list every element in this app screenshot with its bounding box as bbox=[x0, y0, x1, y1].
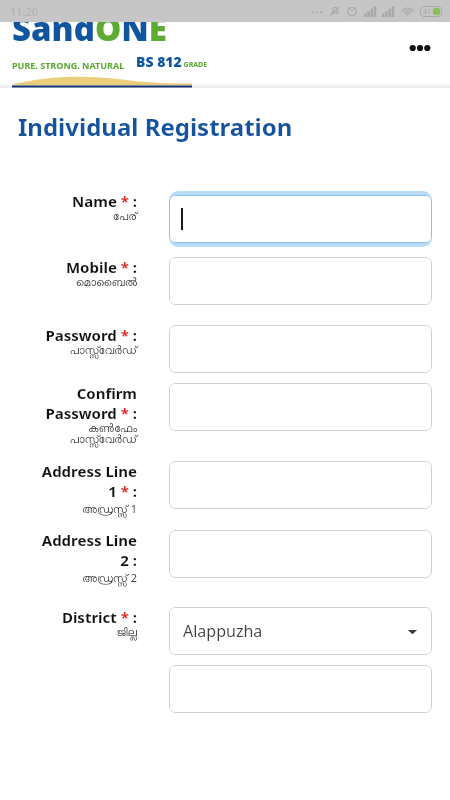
staticText: BS 812 GRADE bbox=[136, 52, 208, 71]
button[interactable]: Name bbox=[169, 191, 432, 247]
staticText: 41 bbox=[423, 7, 432, 17]
button[interactable]: Password bbox=[169, 325, 432, 373]
staticText: ജില്ല bbox=[116, 627, 137, 638]
staticText: Individual Registration bbox=[18, 110, 293, 143]
staticText: SandONE bbox=[12, 6, 167, 51]
staticText: 2 : bbox=[120, 550, 137, 570]
staticText: Password * : bbox=[45, 403, 137, 423]
staticText: മൊബൈൽ bbox=[75, 277, 137, 288]
button[interactable]: Address Line 1 bbox=[169, 461, 432, 509]
staticText: 11:20 bbox=[10, 4, 39, 19]
staticText: പേര് bbox=[112, 211, 137, 222]
staticText: Name * : bbox=[72, 191, 137, 211]
staticText: കൺഫേം bbox=[88, 423, 137, 434]
button[interactable]: More options bbox=[400, 28, 440, 68]
staticText: പാസ്സ്‌വേർഡ് bbox=[69, 345, 137, 356]
staticText: Password * : bbox=[45, 325, 137, 345]
staticText: അഡ്രസ്സ് 2 bbox=[81, 570, 137, 585]
staticText: PURE. STRONG. NATURAL bbox=[12, 59, 125, 71]
staticText: Alappuzha bbox=[183, 620, 263, 642]
staticText: Confirm bbox=[76, 383, 137, 403]
button[interactable]: Mobile bbox=[169, 257, 432, 305]
staticText: Address Line bbox=[41, 530, 137, 550]
button[interactable]: Address Line 2 bbox=[169, 530, 432, 578]
staticText: Mobile * : bbox=[65, 257, 137, 277]
staticText: അഡ്രസ്സ് 1 bbox=[81, 501, 137, 516]
button[interactable]: District bbox=[169, 607, 432, 655]
button[interactable]: Confirm Password bbox=[169, 383, 432, 431]
staticText: 1 * : bbox=[108, 481, 137, 501]
staticText: District * : bbox=[61, 607, 137, 627]
staticText: Address Line bbox=[41, 461, 137, 481]
button[interactable]: Next field bbox=[169, 665, 432, 713]
staticText: പാസ്സ്‌വേർഡ് bbox=[69, 434, 137, 445]
